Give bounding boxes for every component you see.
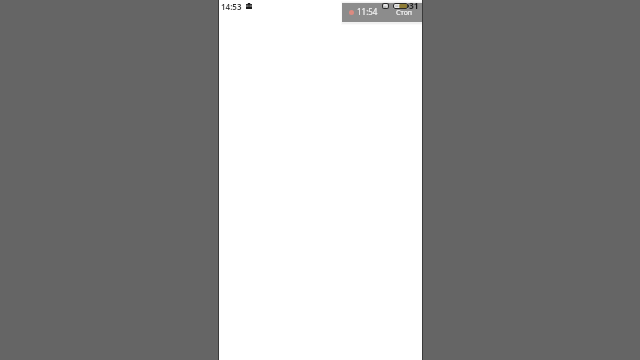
staticText: 11:54: [357, 6, 378, 17]
staticText: 31: [409, 0, 419, 12]
other: Battery 31 percent: [393, 3, 409, 9]
button[interactable]: 11:54: [342, 3, 422, 22]
staticText: Стоп: [396, 8, 413, 18]
other: Cast screen: [382, 3, 389, 9]
staticText: 14:53: [221, 1, 242, 12]
